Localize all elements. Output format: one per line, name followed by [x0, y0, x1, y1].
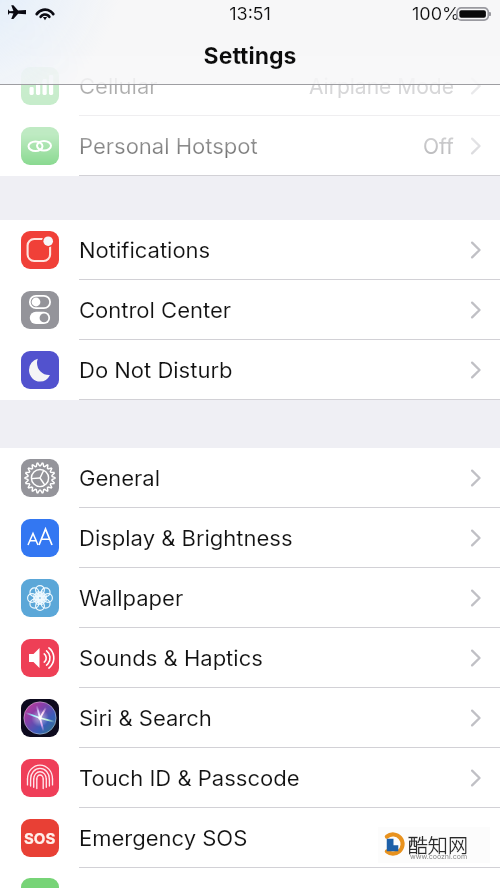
staticText: Do Not Disturb [79, 357, 233, 384]
staticText: SOS [24, 829, 56, 847]
button[interactable]: Cellular [0, 56, 500, 116]
button[interactable]: Wallpaper [0, 568, 500, 628]
other: Battery [457, 7, 491, 21]
staticText: www.coozhi.com [410, 852, 468, 860]
button[interactable]: Display & Brightness [0, 508, 500, 568]
staticText: Wallpaper [79, 585, 184, 612]
staticText: Airplane Mode [309, 74, 454, 99]
staticText: Off [423, 134, 454, 159]
button[interactable]: Siri & Search [0, 688, 500, 748]
button[interactable]: SOS [0, 808, 500, 868]
staticText: Cellular [79, 73, 158, 100]
button[interactable]: Notifications [0, 220, 500, 280]
staticText: Personal Hotspot [79, 133, 258, 160]
staticText: Siri & Search [79, 705, 212, 732]
staticText: Notifications [79, 237, 211, 264]
staticText: Display & Brightness [79, 525, 293, 552]
staticText: Sounds & Haptics [79, 645, 263, 672]
button[interactable]: Control Center [0, 280, 500, 340]
staticText: General [79, 465, 161, 492]
staticText: 13:51 [0, 3, 500, 25]
button[interactable]: Do Not Disturb [0, 340, 500, 400]
button[interactable]: Touch ID & Passcode [0, 748, 500, 808]
other: Airplane mode [8, 5, 26, 19]
staticText: 100% [412, 3, 460, 25]
staticText: 酷知网 [408, 830, 468, 859]
staticText: Control Center [79, 297, 232, 324]
staticText: Settings [0, 42, 500, 70]
other: Wi-Fi [35, 6, 55, 20]
button[interactable]: General [0, 448, 500, 508]
button[interactable]: Personal Hotspot [0, 116, 500, 176]
staticText: Emergency SOS [79, 825, 248, 852]
staticText: Touch ID & Passcode [79, 765, 300, 792]
button[interactable]: Sounds & Haptics [0, 628, 500, 688]
